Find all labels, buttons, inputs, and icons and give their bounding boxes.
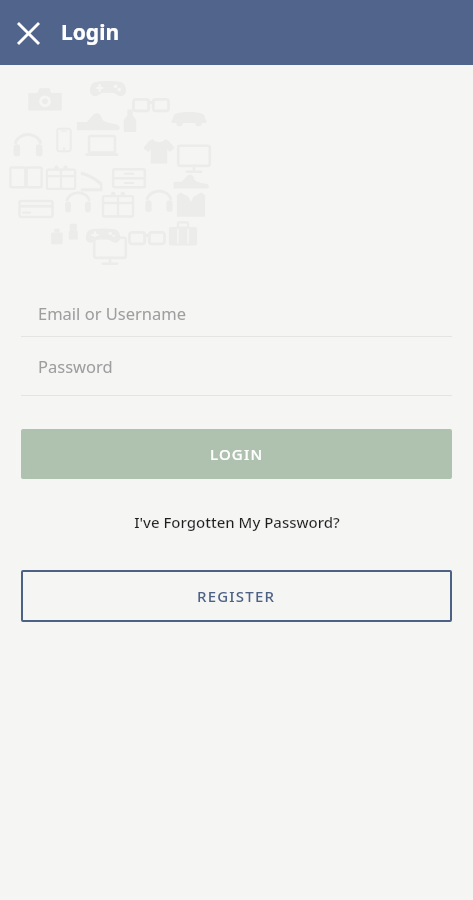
button[interactable]: Close [8,13,48,53]
staticText: I've Forgotten My Password? [134,512,340,532]
button[interactable]: LOGIN [21,429,452,479]
staticText: REGISTER [197,586,276,606]
button[interactable]: REGISTER [21,570,452,622]
staticText: Login [61,18,120,47]
staticText: Email or Username [38,302,187,324]
staticText: Password [38,355,113,377]
staticText: LOGIN [210,444,264,464]
button[interactable]: I've Forgotten My Password? [21,507,452,537]
